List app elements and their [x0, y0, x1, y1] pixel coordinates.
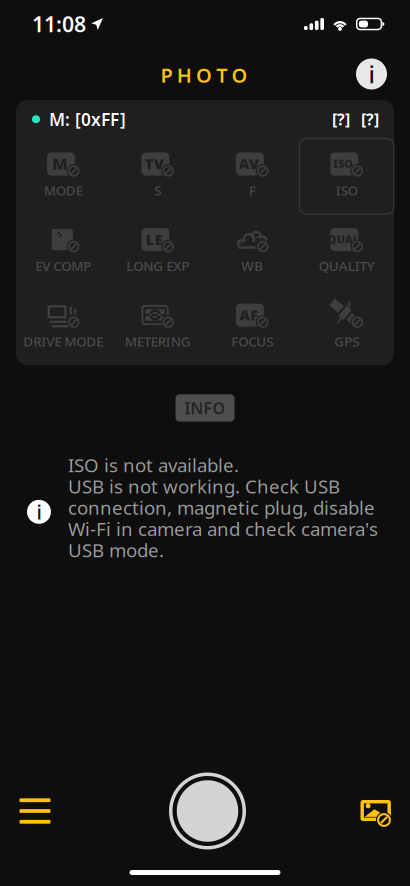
- button[interactable]: TV: [110, 138, 205, 214]
- staticText: EV COMP: [35, 257, 91, 275]
- button[interactable]: INFO: [175, 394, 234, 421]
- staticText: AV: [239, 154, 259, 173]
- staticText: ISO: [333, 156, 353, 171]
- staticText: [?]: [332, 109, 350, 130]
- button[interactable]: Info: [349, 52, 393, 96]
- button[interactable]: WB: [205, 214, 299, 290]
- button[interactable]: Gallery: [340, 779, 404, 843]
- staticText: METERING: [125, 333, 191, 350]
- staticText: F: [249, 181, 256, 199]
- staticText: GPS: [334, 333, 359, 350]
- button[interactable]: ISO: [299, 138, 394, 214]
- staticText: M: [52, 153, 67, 174]
- staticText: ISO is not available. USB is not working…: [68, 452, 378, 562]
- staticText: TV: [145, 154, 164, 173]
- button[interactable]: AV: [205, 138, 299, 214]
- staticText: i: [368, 58, 374, 90]
- staticText: M: [0xFF]: [49, 108, 126, 131]
- button[interactable]: Menu: [3, 779, 67, 843]
- staticText: S: [154, 181, 161, 199]
- staticText: i: [36, 498, 41, 525]
- button[interactable]: LE: [110, 214, 205, 290]
- button[interactable]: METERING: [110, 290, 205, 365]
- button[interactable]: QUAL: [299, 214, 394, 290]
- button[interactable]: EV COMP: [16, 214, 110, 290]
- staticText: AF: [239, 305, 258, 325]
- button[interactable]: GPS: [299, 290, 394, 365]
- staticText: FOCUS: [231, 333, 273, 350]
- staticText: QUALITY: [319, 257, 375, 275]
- staticText: INFO: [184, 397, 225, 418]
- staticText: [?]: [361, 109, 379, 130]
- staticText: LONG EXP: [126, 257, 189, 275]
- staticText: P H O T O: [161, 62, 247, 88]
- staticText: MODE: [44, 181, 83, 199]
- staticText: WB: [241, 257, 263, 275]
- button[interactable]: AF: [205, 290, 299, 365]
- staticText: DRIVE MODE: [23, 333, 103, 350]
- staticText: LE: [146, 229, 163, 249]
- button[interactable]: Shutter: [159, 767, 247, 855]
- staticText: 11:08: [32, 10, 86, 38]
- staticText: ISO: [336, 181, 358, 199]
- staticText: QUAL: [328, 232, 359, 246]
- button[interactable]: DRIVE MODE: [16, 290, 110, 365]
- button[interactable]: M: [16, 138, 110, 214]
